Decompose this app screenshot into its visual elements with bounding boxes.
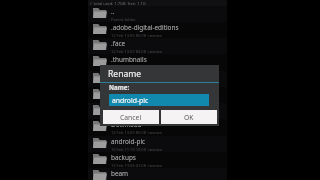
staticText: OK (184, 113, 194, 122)
staticText: Cancel (120, 113, 142, 122)
staticText: backups (111, 153, 136, 162)
button[interactable]: .thumbnails (88, 54, 227, 70)
staticText: Download (111, 120, 142, 129)
staticText: 12 Feb 13:06 85:08 rwxrwx (111, 114, 162, 119)
button[interactable]: OK (161, 110, 217, 124)
button[interactable]: Android (88, 87, 227, 103)
staticText: 12 Feb 13:07 83:08 rwxrwx (111, 49, 162, 54)
button[interactable]: backups (88, 152, 227, 168)
staticText: Parent folder (111, 17, 136, 22)
staticText: Name: (109, 83, 130, 91)
staticText: android-pic (111, 137, 146, 146)
button[interactable]: .. (88, 6, 227, 22)
staticText: 13 Feb 13:06 41:08 rwxrwx (111, 163, 162, 168)
staticText: .thumbnails (111, 55, 147, 64)
button[interactable]: android-pic (88, 136, 227, 152)
staticText: 10 Feb 11:19 10:00 rwxrwx (111, 147, 162, 152)
staticText: beam (111, 169, 129, 178)
staticText: Android (111, 88, 135, 97)
staticText: 12 Feb 13:06 85:08 rwxrwx (111, 98, 162, 103)
staticText: .adobe-digital-editions (111, 23, 179, 32)
staticText: .face (111, 39, 126, 48)
staticText: / total used: 1.7GB free: 1.1G (90, 1, 146, 6)
button[interactable]: DCIM (88, 103, 227, 119)
staticText: Rename (108, 68, 142, 80)
button[interactable]: Download (88, 119, 227, 135)
staticText: .. (111, 7, 115, 16)
staticText: Alarms (111, 72, 132, 81)
button[interactable]: Cancel (103, 110, 159, 124)
staticText: DCIM (111, 104, 128, 113)
button[interactable]: android-pic (109, 94, 209, 106)
staticText: 12 Feb 13:06 85:08 rwxrwx (111, 130, 162, 135)
button[interactable]: .adobe-digital-editions (88, 22, 227, 38)
button[interactable]: Alarms (88, 71, 227, 87)
button[interactable]: .face (88, 38, 227, 54)
staticText: 12 Feb 13:06 85:08 rwxrwx (111, 82, 162, 87)
button[interactable]: beam (88, 168, 227, 180)
staticText: 12 Feb 13:06 85:08 rwxrwx (111, 33, 162, 38)
staticText: android-pic (112, 96, 149, 105)
